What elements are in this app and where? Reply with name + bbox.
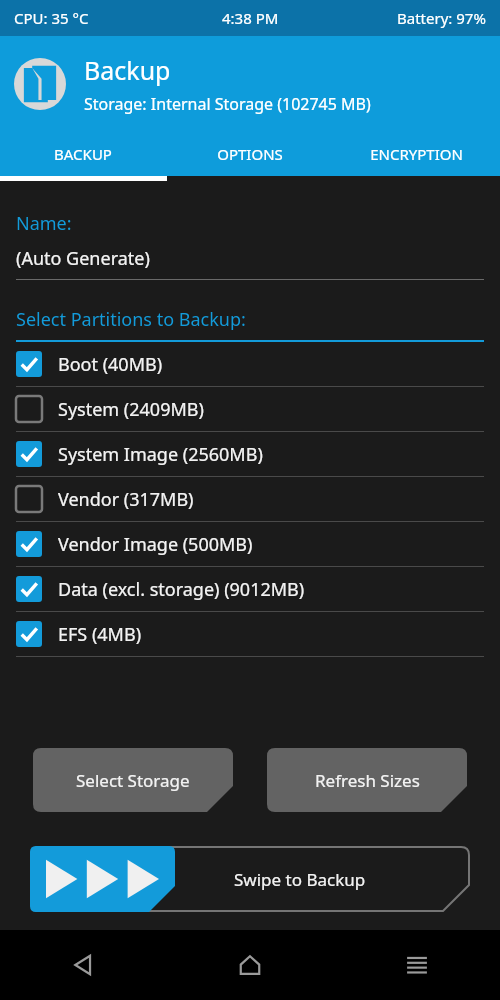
staticText: System Image (2560MB) xyxy=(58,442,263,467)
button[interactable]: Swipe to Backup xyxy=(30,846,470,912)
button[interactable]: Vendor (317MB) xyxy=(0,477,500,522)
staticText: CPU: 35 °C xyxy=(14,8,89,28)
button[interactable]: Data (excl. storage) (9012MB) xyxy=(0,567,500,612)
button[interactable]: Refresh Sizes xyxy=(267,748,467,812)
button[interactable]: System (2409MB) xyxy=(0,387,500,432)
staticText: Swipe to Backup xyxy=(234,868,366,891)
staticText: Select Partitions to Backup: xyxy=(16,307,246,332)
button[interactable]: Back xyxy=(0,930,166,1000)
button[interactable]: Vendor Image (500MB) xyxy=(0,522,500,567)
button[interactable]: EFS (4MB) xyxy=(0,612,500,657)
button[interactable]: Home xyxy=(166,930,333,1000)
staticText: Vendor (317MB) xyxy=(58,487,194,512)
staticText: Vendor Image (500MB) xyxy=(58,532,253,557)
staticText: Select Storage xyxy=(76,769,190,792)
staticText: Name: xyxy=(16,211,72,236)
staticText: EFS (4MB) xyxy=(58,622,142,647)
button[interactable]: Boot (40MB) xyxy=(0,342,500,387)
button[interactable]: (Auto Generate) xyxy=(16,246,484,280)
staticText: Data (excl. storage) (9012MB) xyxy=(58,577,305,602)
button[interactable]: OPTIONS xyxy=(166,132,333,176)
staticText: Battery: 97% xyxy=(397,8,486,28)
staticText: 4:38 PM xyxy=(222,8,279,28)
staticText: System (2409MB) xyxy=(58,397,204,422)
button[interactable]: Select Storage xyxy=(33,748,233,812)
button[interactable]: BACKUP xyxy=(0,132,166,176)
staticText: (Auto Generate) xyxy=(16,246,150,271)
button[interactable]: ENCRYPTION xyxy=(333,132,500,176)
staticText: BACKUP xyxy=(54,144,112,164)
staticText: Storage: Internal Storage (102745 MB) xyxy=(84,93,371,115)
staticText: ENCRYPTION xyxy=(370,144,463,164)
button[interactable]: System Image (2560MB) xyxy=(0,432,500,477)
staticText: Backup xyxy=(84,53,171,87)
button[interactable]: Menu xyxy=(333,930,500,1000)
staticText: Boot (40MB) xyxy=(58,352,163,377)
staticText: OPTIONS xyxy=(217,144,283,164)
staticText: Refresh Sizes xyxy=(315,769,420,792)
